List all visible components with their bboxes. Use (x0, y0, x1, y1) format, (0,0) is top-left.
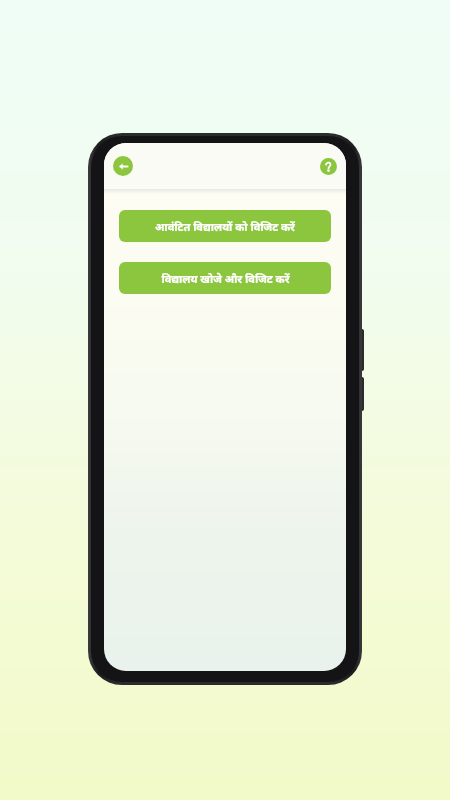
button[interactable]: Back (113, 156, 133, 176)
button[interactable]: विद्यालय खोजे और विजिट करें (119, 262, 331, 294)
staticText: विद्यालय खोजे और विजिट करें (161, 271, 290, 286)
button[interactable]: आवंटित विद्यालयों को विजिट करें (119, 210, 331, 242)
button[interactable]: Help (320, 158, 337, 175)
staticText: आवंटित विद्यालयों को विजिट करें (155, 219, 295, 234)
